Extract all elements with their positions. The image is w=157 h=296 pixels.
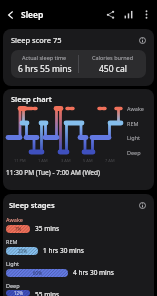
staticText: 4 hrs 30 mins <box>73 268 114 277</box>
staticText: 5 AM <box>83 158 93 163</box>
button[interactable] <box>7 11 15 19</box>
staticText: 7% <box>15 226 22 232</box>
staticText: Deep <box>127 149 141 156</box>
staticText: 55 mins <box>35 290 60 296</box>
staticText: Sleep <box>21 9 44 21</box>
staticText: Light <box>127 134 141 141</box>
button[interactable]: Light <box>6 260 146 277</box>
staticText: REM <box>127 120 139 127</box>
button[interactable] <box>106 10 115 19</box>
button[interactable]: Sleep stages <box>3 194 154 296</box>
staticText: 7 AM <box>105 158 115 163</box>
staticText: Actual sleep time <box>22 54 67 61</box>
button[interactable] <box>139 37 146 44</box>
button[interactable]: Deep <box>6 282 146 296</box>
staticText: Sleep score 75 <box>11 35 62 45</box>
staticText: Sleep chart <box>11 94 52 104</box>
staticText: 20% <box>18 248 27 254</box>
button[interactable]: Actual sleep time <box>11 50 78 78</box>
staticText: Sleep stages <box>9 200 55 210</box>
staticText: 11:30 PM (Tue) - 7:00 AM (Wed) <box>6 168 100 177</box>
button[interactable]: Sleep score 75 <box>3 29 154 86</box>
staticText: 450 cal <box>99 63 127 75</box>
staticText: 60% <box>33 270 42 276</box>
button[interactable]: REM <box>6 238 146 255</box>
staticText: Light <box>6 260 20 267</box>
staticText: 35 mins <box>35 224 60 233</box>
button[interactable] <box>142 10 151 19</box>
button[interactable]: Sleep chart <box>3 89 154 190</box>
staticText: 12% <box>14 290 23 296</box>
staticText: Calories burned <box>92 54 134 61</box>
button[interactable]: Awake <box>6 216 146 233</box>
staticText: 3 AM <box>61 158 71 163</box>
staticText: 1 hrs 30 mins <box>43 246 84 255</box>
button[interactable]: Calories burned <box>79 50 146 78</box>
staticText: Awake <box>127 105 144 112</box>
staticText: 11 PM <box>14 158 26 163</box>
staticText: Awake <box>6 216 23 223</box>
staticText: Deep <box>6 282 20 289</box>
button[interactable] <box>124 10 133 19</box>
button[interactable] <box>139 202 146 209</box>
staticText: 1 AM <box>38 158 48 163</box>
staticText: REM <box>6 238 18 245</box>
staticText: 6 hrs 55 mins <box>18 63 72 75</box>
